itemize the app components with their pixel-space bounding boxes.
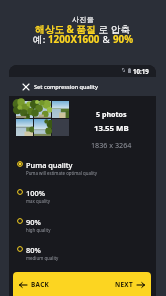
staticText: 해상도 & 품질	[35, 23, 96, 36]
staticText: 10:19	[133, 67, 149, 75]
button[interactable]: 90%	[9, 212, 156, 234]
staticText: 사진을	[72, 15, 94, 24]
button[interactable]: Close	[18, 77, 34, 96]
staticText: high quality	[26, 227, 51, 233]
staticText: 100%	[26, 188, 45, 198]
staticText: 1200X1600	[48, 33, 100, 46]
staticText: max quality	[26, 198, 50, 204]
staticText: 1836 x 3264	[91, 140, 132, 150]
staticText: Set compression quality	[34, 83, 98, 91]
staticText: 13.55 MB	[94, 123, 129, 134]
staticText: 90%	[113, 33, 134, 46]
button[interactable]: Puma quality	[9, 155, 156, 177]
staticText: BACK	[31, 280, 50, 289]
staticText: NEXT	[115, 280, 133, 289]
staticText: 80%	[26, 245, 41, 255]
button[interactable]: 100%	[9, 183, 156, 205]
staticText: 5 photos	[96, 109, 127, 119]
staticText: &	[100, 33, 113, 46]
button[interactable]: BACK	[13, 272, 82, 296]
staticText: 로 압축	[96, 23, 131, 36]
staticText: 90%	[26, 217, 41, 227]
staticText: Puma quality	[26, 160, 73, 170]
button[interactable]: NEXT	[82, 272, 151, 296]
button[interactable]: 80%	[9, 240, 156, 262]
staticText: medium quality	[26, 255, 59, 261]
staticText: Puma will estimate optimal quality	[26, 170, 98, 176]
staticText: 예:	[33, 33, 48, 46]
